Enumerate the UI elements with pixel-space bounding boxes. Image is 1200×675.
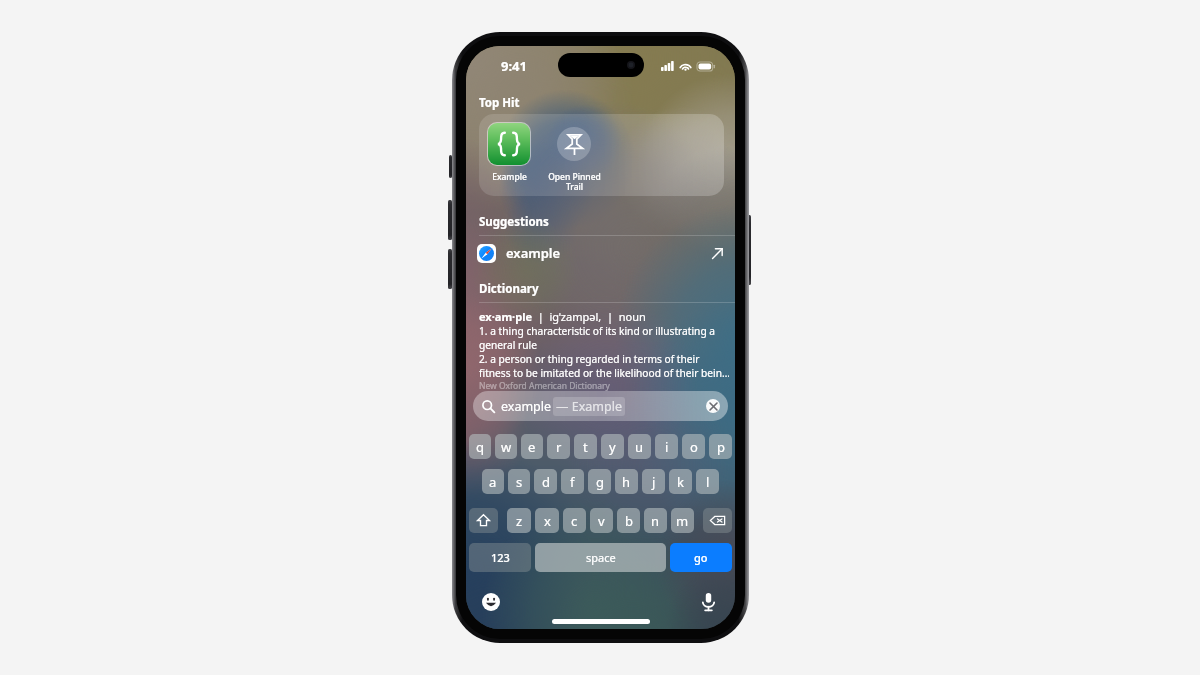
staticText: n	[651, 512, 660, 530]
staticText: Example	[492, 171, 527, 183]
button[interactable]: g	[588, 469, 611, 494]
button[interactable]: p	[709, 434, 732, 459]
staticText: space	[586, 550, 616, 565]
button[interactable]: Example	[479, 114, 724, 196]
button[interactable]: s	[508, 469, 530, 494]
button[interactable]: i	[655, 434, 678, 459]
button[interactable]: Delete	[703, 508, 732, 533]
staticText: b	[625, 512, 633, 530]
button[interactable]: Example	[482, 122, 536, 183]
button[interactable]: space	[535, 543, 666, 572]
staticText: d	[542, 473, 550, 491]
button[interactable]: example	[466, 236, 735, 270]
button[interactable]: Open Pinned Trail	[541, 122, 607, 193]
staticText: Suggestions	[479, 214, 549, 230]
staticText: Top Hit	[479, 95, 520, 111]
staticText: g	[596, 473, 604, 491]
staticText: c	[571, 512, 578, 530]
staticText: m	[676, 512, 689, 530]
button[interactable]: y	[601, 434, 624, 459]
staticText: e	[528, 438, 536, 456]
button[interactable]: b	[617, 508, 640, 533]
staticText: | igˈzampəl, | noun	[532, 309, 646, 324]
button[interactable]: j	[642, 469, 665, 494]
staticText: w	[501, 438, 512, 456]
button[interactable]: u	[628, 434, 651, 459]
staticText: Open Pinned Trail	[548, 171, 601, 193]
button[interactable]: f	[561, 469, 584, 494]
staticText: r	[556, 438, 562, 456]
button[interactable]: l	[696, 469, 719, 494]
button[interactable]: r	[547, 434, 570, 459]
button[interactable]: v	[590, 508, 613, 533]
staticText: ex·am·ple	[479, 309, 532, 324]
staticText: x	[544, 512, 551, 530]
button[interactable]: c	[563, 508, 586, 533]
button[interactable]: Shift	[469, 508, 498, 533]
button[interactable]: d	[534, 469, 557, 494]
staticText: 1. a thing characteristic of its kind or…	[479, 324, 729, 380]
staticText: s	[516, 473, 523, 491]
staticText: a	[489, 473, 497, 491]
staticText: h	[622, 473, 631, 491]
staticText: o	[690, 438, 698, 456]
button[interactable]: e	[521, 434, 543, 459]
staticText: j	[652, 473, 656, 491]
staticText: f	[570, 473, 575, 491]
button[interactable]: n	[644, 508, 667, 533]
staticText: example	[506, 244, 561, 262]
button[interactable]: example	[473, 391, 728, 421]
staticText: p	[717, 438, 725, 456]
button[interactable]: Emoji keyboard	[482, 593, 500, 611]
staticText: go	[694, 550, 708, 565]
staticText: q	[476, 438, 484, 456]
button[interactable]: Dictation	[698, 591, 719, 612]
staticText: k	[677, 473, 684, 491]
staticText: Dictionary	[479, 281, 539, 297]
staticText: z	[516, 512, 523, 530]
button[interactable]: h	[615, 469, 638, 494]
staticText: i	[665, 438, 669, 456]
button[interactable]: t	[574, 434, 597, 459]
staticText: v	[598, 512, 605, 530]
button[interactable]: z	[507, 508, 531, 533]
staticText: t	[583, 438, 588, 456]
staticText: u	[635, 438, 644, 456]
button[interactable]: m	[671, 508, 694, 533]
staticText: example	[501, 398, 552, 415]
staticText: 123	[491, 550, 510, 565]
button[interactable]: x	[535, 508, 559, 533]
button[interactable]: o	[682, 434, 705, 459]
button[interactable]: w	[495, 434, 517, 459]
button[interactable]: q	[469, 434, 491, 459]
staticText: — Example	[556, 398, 622, 415]
button[interactable]: go	[670, 543, 732, 572]
button[interactable]: k	[669, 469, 692, 494]
button[interactable]: a	[482, 469, 504, 494]
staticText: y	[609, 438, 616, 456]
staticText: 9:41	[501, 57, 527, 75]
staticText: l	[706, 473, 710, 491]
button[interactable]: 123	[469, 543, 531, 572]
staticText: New Oxford American Dictionary	[479, 380, 610, 392]
button[interactable]: Clear search	[706, 399, 720, 413]
